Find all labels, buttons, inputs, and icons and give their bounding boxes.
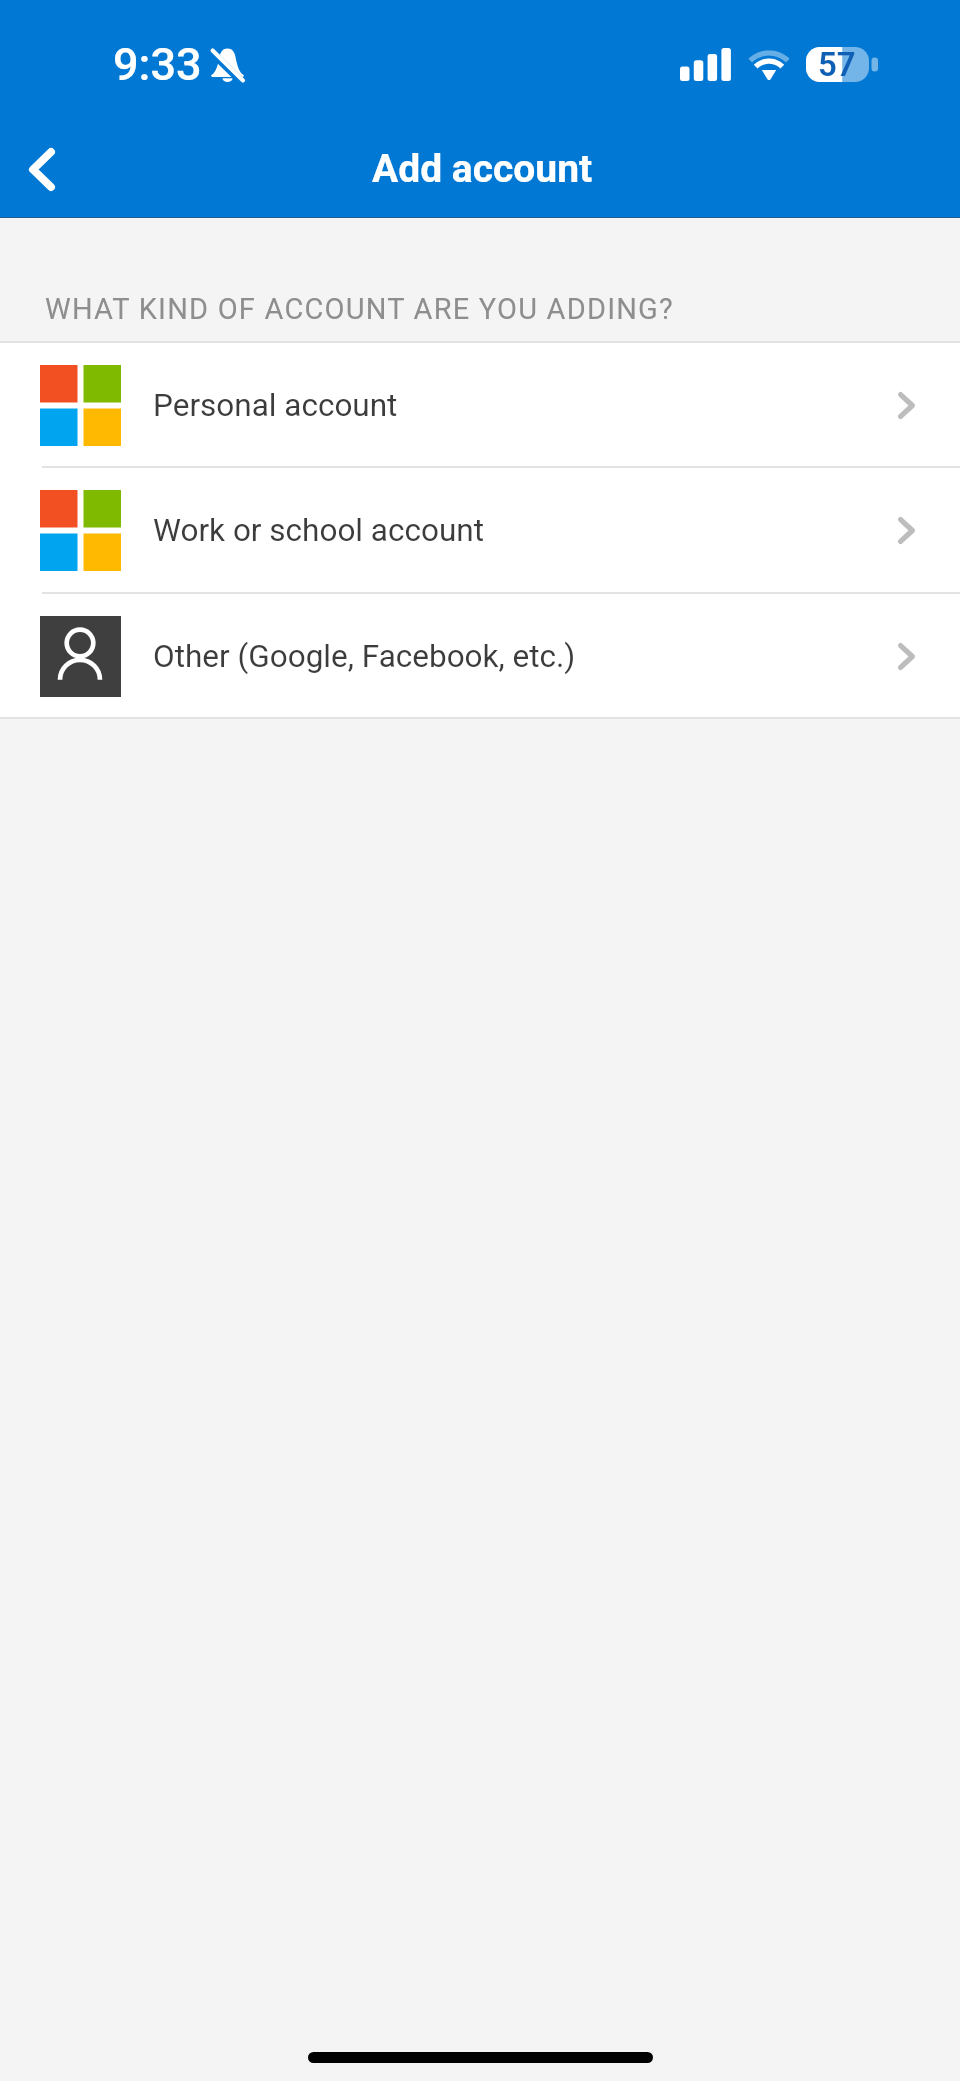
staticText: Add account — [372, 146, 593, 192]
button[interactable]: Personal account — [0, 343, 960, 467]
staticText: WHAT KIND OF ACCOUNT ARE YOU ADDING? — [45, 292, 674, 326]
staticText: Work or school account — [153, 512, 484, 549]
button[interactable]: Work or school account — [0, 468, 960, 592]
button[interactable]: Other (Google, Facebook, etc.) — [0, 594, 960, 718]
button[interactable]: Back — [0, 122, 84, 206]
staticText: Personal account — [153, 387, 398, 424]
staticText: 9:33 — [113, 38, 202, 91]
staticText: 57 — [818, 45, 856, 80]
staticText: Other (Google, Facebook, etc.) — [153, 638, 576, 675]
